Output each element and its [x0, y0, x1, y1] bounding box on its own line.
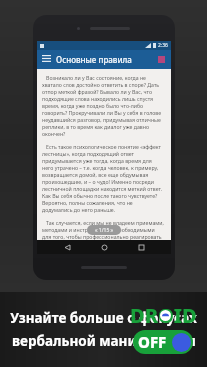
staticText: время, когда уже поздно было что-либо: [42, 102, 144, 109]
staticText: возвращается домой, все еще обдумывая: [42, 171, 149, 178]
staticText: подходящие слова находились лишь спустя: [42, 95, 154, 102]
staticText: отпор меткой фразой? Бывало ли у Вас, чт…: [42, 88, 153, 95]
staticText: методами и инструментами, необходимыми: [42, 226, 155, 233]
staticText: реплики, в то время как диалог уже давно: [42, 123, 150, 130]
staticText: Вероятно, полны сожаления, что не: [42, 199, 133, 206]
staticText: Узнайте больше о фокусах: [10, 309, 197, 327]
staticText: произошедшее, и – о чудо! Именно посреди: [42, 178, 154, 185]
button[interactable]: « 1/15 »: [87, 225, 121, 235]
staticText: « 1/15 »: [95, 227, 114, 234]
button[interactable]: Open navigation menu: [37, 50, 56, 69]
staticText: Основные правила: [56, 54, 152, 65]
staticText: окончен?: [42, 130, 66, 137]
staticText: него утрачено – т.е. когда человек, к пр…: [42, 164, 159, 171]
staticText: неудавшийся разговор, придумывая отличны…: [42, 116, 161, 123]
staticText: придумывается уже тогда, когда время для: [42, 157, 152, 164]
staticText: лестницы», когда подходящий ответ: [42, 150, 135, 157]
button[interactable]: Bookmark: [152, 50, 171, 69]
staticText: Есть такое психологическое понятие «эффе…: [42, 143, 162, 150]
staticText: Как Вы себя обычно после такого чувствуе…: [42, 192, 158, 199]
staticText: OFF: [138, 332, 167, 352]
staticText: Возникало ли у Вас состояние, когда не: [42, 74, 146, 81]
staticText: 2:36: [158, 42, 168, 49]
staticText: додумались до него раньше.: [42, 206, 116, 213]
staticText: говорить? Прокручивали ли Вы у себя в го…: [42, 109, 162, 116]
staticText: вербальной манипуляции: [12, 332, 196, 350]
staticText: для того, чтобы профессионально реагиров…: [42, 233, 162, 240]
button[interactable]: Back: [60, 240, 74, 254]
staticText: лестничной площадки находится меткий отв…: [42, 185, 163, 192]
staticText: Так случается, если мы не владеем приема…: [42, 219, 164, 226]
button[interactable]: Recent apps: [134, 240, 148, 254]
button[interactable]: Home: [97, 240, 111, 254]
staticText: хватало слов достойно ответить в споре? …: [42, 81, 160, 88]
staticText: DROID: [130, 302, 197, 329]
